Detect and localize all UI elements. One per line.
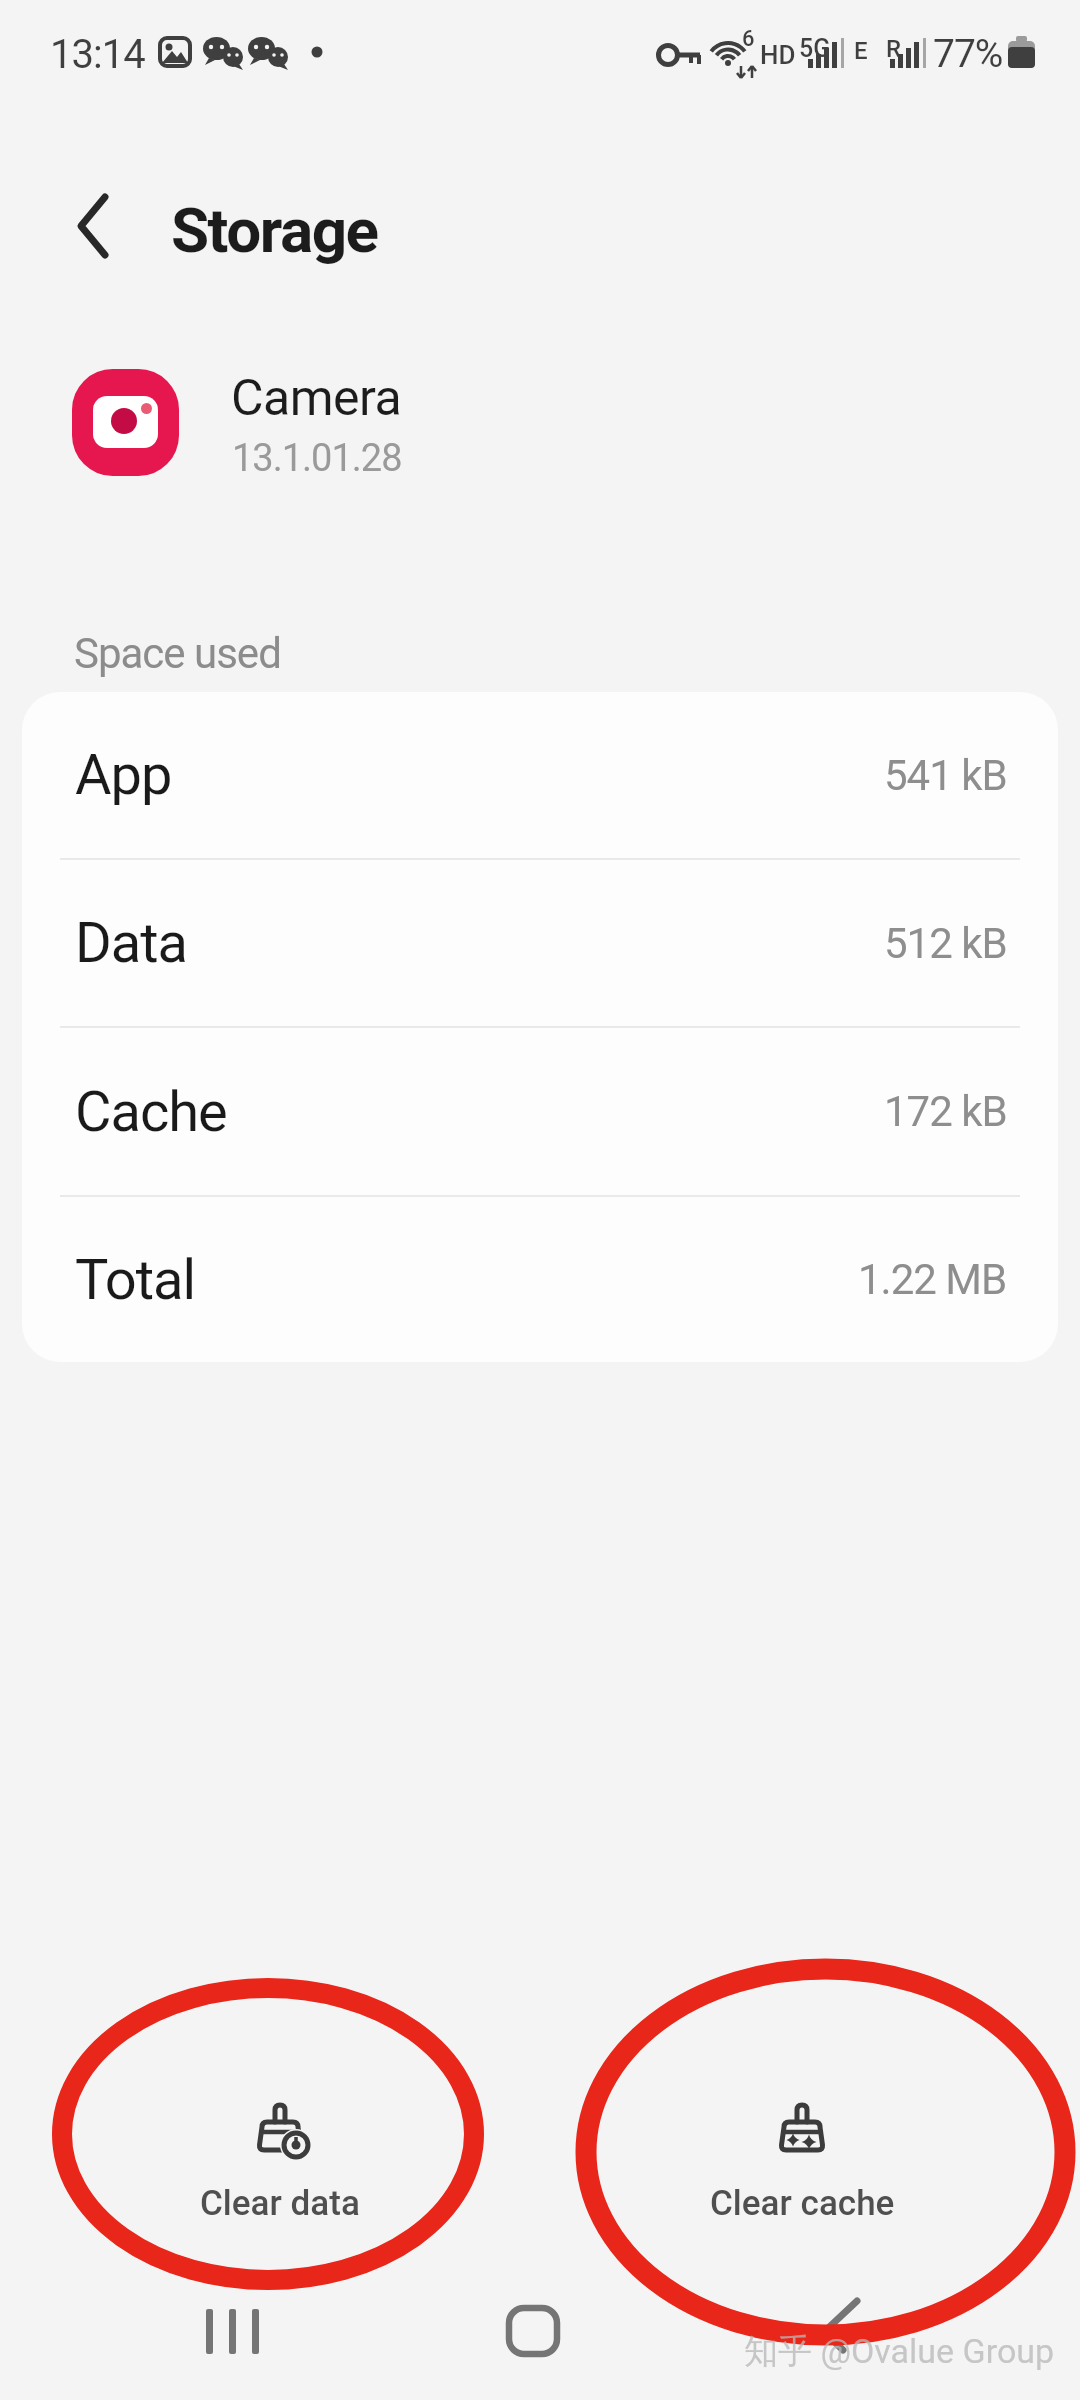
button[interactable]: Total xyxy=(22,1197,1058,1362)
staticText: 5G xyxy=(799,34,831,63)
staticText: Data xyxy=(75,910,187,976)
staticText: 6 xyxy=(742,26,755,52)
staticText: 172 kB xyxy=(884,1087,1007,1136)
staticText: 13:14 xyxy=(50,31,145,78)
staticText: App xyxy=(75,742,172,808)
staticText: Camera xyxy=(231,369,402,428)
staticText: Clear cache xyxy=(710,2183,895,2224)
button[interactable] xyxy=(790,2290,900,2375)
staticText: 知乎 @Ovalue Group xyxy=(744,2330,1055,2373)
button[interactable]: Data xyxy=(22,860,1058,1026)
staticText: 13.1.01.28 xyxy=(232,436,402,481)
staticText: Total xyxy=(75,1247,196,1313)
button[interactable]: Clear data xyxy=(170,2101,390,2236)
staticText: HD xyxy=(760,40,796,70)
button[interactable]: Clear cache xyxy=(692,2101,912,2236)
button[interactable] xyxy=(480,2290,590,2375)
button[interactable] xyxy=(60,186,140,266)
staticText: 1.22 MB xyxy=(858,1255,1007,1304)
staticText: R xyxy=(886,35,901,63)
staticText: Cache xyxy=(75,1079,227,1145)
staticText: Clear data xyxy=(200,2183,360,2224)
staticText: 77% xyxy=(933,31,1003,77)
button[interactable]: App xyxy=(22,692,1058,858)
button[interactable]: Cache xyxy=(22,1028,1058,1195)
staticText: 512 kB xyxy=(884,919,1007,968)
staticText: Space used xyxy=(74,629,281,678)
staticText: 541 kB xyxy=(884,751,1007,800)
staticText: Storage xyxy=(171,194,378,267)
button[interactable] xyxy=(180,2290,290,2375)
staticText: E xyxy=(854,37,868,65)
